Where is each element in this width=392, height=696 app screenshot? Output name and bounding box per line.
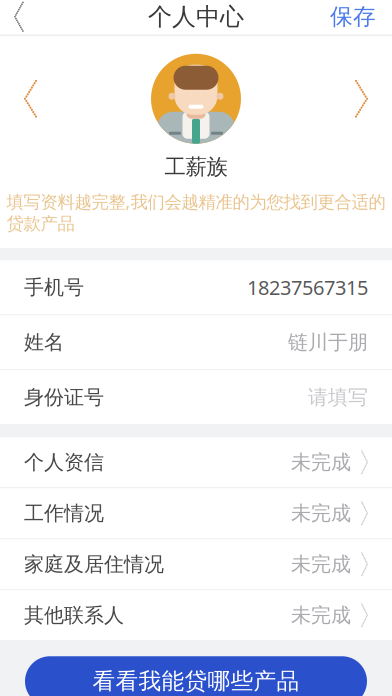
staticText: 手机号	[24, 275, 84, 300]
staticText: 未完成	[291, 450, 351, 475]
button[interactable]: 工作情况	[0, 488, 392, 539]
button[interactable]: 上一个	[8, 69, 53, 129]
button[interactable]: 个人资信	[0, 437, 392, 488]
button[interactable]: 看看我能贷哪些产品	[25, 656, 367, 696]
button[interactable]: 其他联系人	[0, 590, 392, 641]
staticText: 姓名	[24, 330, 64, 355]
button[interactable]: 身份证号	[0, 370, 392, 425]
staticText: 18237567315	[247, 274, 368, 301]
staticText: 个人资信	[24, 450, 104, 475]
staticText: 家庭及居住情况	[24, 552, 164, 577]
staticText: 工薪族	[164, 154, 227, 180]
staticText: 填写资料越完整,我们会越精准的为您找到更合适的贷款产品	[6, 190, 385, 234]
staticText: 未完成	[291, 501, 351, 526]
button[interactable]: 下一个	[339, 69, 384, 129]
button[interactable]: 保存	[314, 0, 392, 35]
staticText: 保存	[330, 3, 376, 31]
button[interactable]: 返回	[0, 0, 38, 35]
staticText: 身份证号	[24, 385, 104, 410]
staticText: 请填写	[308, 385, 368, 410]
button[interactable]: 姓名	[0, 315, 392, 370]
staticText: 链川于朋	[288, 330, 368, 355]
staticText: 未完成	[291, 552, 351, 577]
staticText: 个人中心	[148, 2, 244, 31]
button[interactable]: 手机号	[0, 260, 392, 315]
staticText: 看看我能贷哪些产品	[92, 667, 299, 695]
staticText: 工作情况	[24, 501, 104, 526]
staticText: 未完成	[291, 603, 351, 628]
button[interactable]: 家庭及居住情况	[0, 539, 392, 590]
staticText: 其他联系人	[24, 603, 124, 628]
